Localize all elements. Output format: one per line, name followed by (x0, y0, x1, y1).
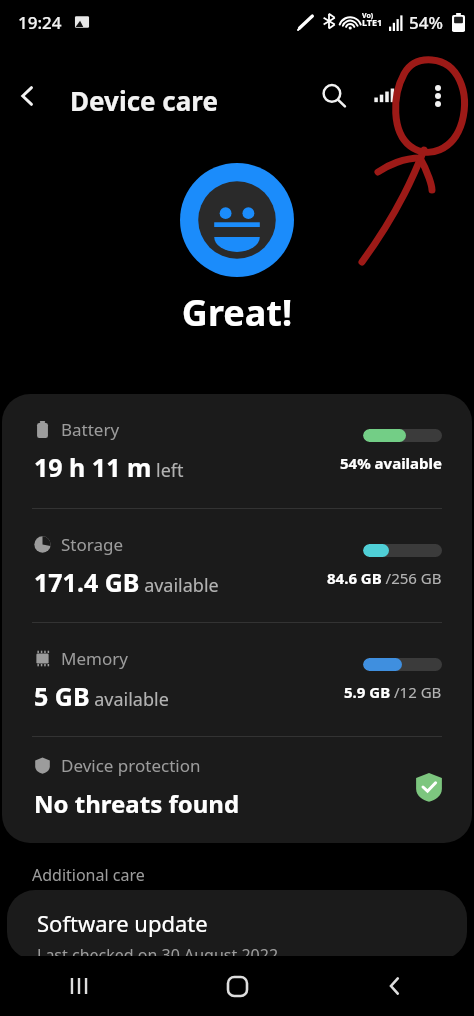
staticText: 171.4 GB available (34, 565, 219, 599)
button[interactable]: Battery (2, 394, 472, 508)
button[interactable]: Signal info (356, 68, 412, 124)
button[interactable]: Recents (0, 956, 158, 1016)
staticText: Memory (61, 647, 128, 670)
staticText: Device protection (61, 754, 201, 777)
button[interactable]: Memory (2, 623, 472, 736)
staticText: 19 h 11 m left (34, 450, 184, 484)
staticText: Storage (61, 533, 124, 556)
staticText: Software update (37, 908, 208, 938)
button[interactable]: Storage (2, 509, 472, 622)
staticText: 54% available (340, 453, 442, 473)
staticText: 19:24 (18, 11, 62, 34)
staticText: 5.9 GB /12 GB (344, 682, 442, 702)
button[interactable]: Device care (70, 83, 218, 118)
staticText: Vo) LTE1 (362, 11, 383, 29)
staticText: 84.6 GB /256 GB (327, 568, 442, 588)
button[interactable]: Back (0, 68, 56, 124)
button[interactable]: Search (306, 68, 362, 124)
button[interactable]: More options (410, 68, 466, 124)
button[interactable]: Back (316, 956, 474, 1016)
staticText: Additional care (32, 864, 145, 886)
staticText: Great! (0, 288, 474, 337)
button[interactable]: Device protection (2, 737, 472, 837)
staticText: Last checked on 30 August 2022 (37, 944, 279, 960)
staticText: 54% (409, 11, 443, 34)
staticText: 5 GB available (34, 679, 169, 713)
button[interactable]: Software update (7, 890, 467, 960)
staticText: No threats found (34, 787, 240, 820)
staticText: Battery (61, 418, 120, 441)
button[interactable]: Home (158, 956, 316, 1016)
